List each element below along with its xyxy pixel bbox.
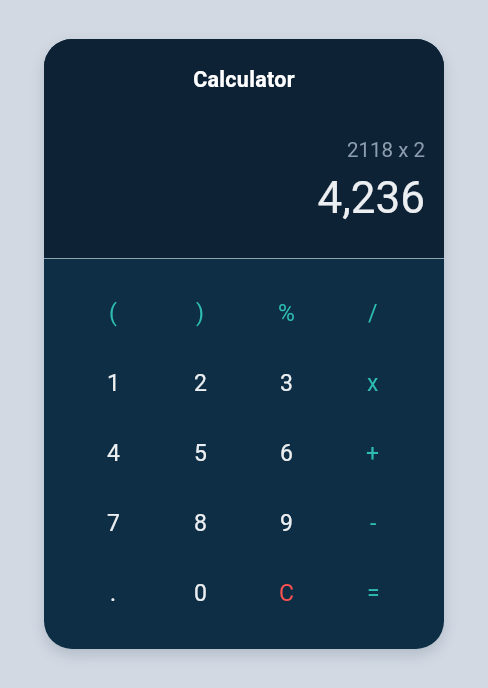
button[interactable]: Open bracket bbox=[70, 278, 156, 348]
staticText: 8 bbox=[194, 510, 207, 537]
staticText: 3 bbox=[280, 370, 293, 397]
staticText: 0 bbox=[194, 580, 207, 607]
staticText: 4,236 bbox=[317, 172, 425, 224]
button[interactable]: Seven bbox=[70, 488, 156, 558]
staticText: 2 bbox=[194, 370, 207, 397]
button[interactable]: Divide bbox=[330, 278, 416, 348]
staticText: 1 bbox=[107, 370, 120, 397]
staticText: 6 bbox=[280, 440, 293, 467]
staticText: x bbox=[367, 370, 379, 397]
button[interactable]: Two bbox=[157, 348, 243, 418]
staticText: 2118 x 2 bbox=[347, 138, 425, 162]
staticText: ) bbox=[196, 300, 205, 327]
button[interactable]: Zero bbox=[157, 558, 243, 628]
staticText: 5 bbox=[194, 440, 207, 467]
button[interactable]: Four bbox=[70, 418, 156, 488]
button[interactable]: Close bracket bbox=[157, 278, 243, 348]
staticText: - bbox=[370, 510, 377, 537]
staticText: 4 bbox=[107, 440, 120, 467]
staticText: C bbox=[279, 580, 294, 607]
button[interactable]: Plus bbox=[330, 418, 416, 488]
button[interactable]: Decimal point bbox=[70, 558, 156, 628]
staticText: . bbox=[110, 580, 117, 607]
staticText: / bbox=[368, 300, 378, 327]
staticText: % bbox=[278, 300, 295, 327]
button[interactable]: Equals bbox=[330, 558, 416, 628]
staticText: ( bbox=[109, 300, 117, 327]
button[interactable]: Minus bbox=[330, 488, 416, 558]
staticText: = bbox=[367, 580, 380, 607]
button[interactable]: Nine bbox=[243, 488, 329, 558]
button[interactable]: Eight bbox=[157, 488, 243, 558]
button[interactable]: Six bbox=[243, 418, 329, 488]
staticText: 7 bbox=[107, 510, 120, 537]
button[interactable]: Three bbox=[243, 348, 329, 418]
staticText: + bbox=[366, 440, 380, 467]
button[interactable]: Multiply bbox=[330, 348, 416, 418]
button[interactable]: One bbox=[70, 348, 156, 418]
button[interactable]: Clear bbox=[243, 558, 329, 628]
button[interactable]: Five bbox=[157, 418, 243, 488]
staticText: Calculator bbox=[193, 67, 295, 92]
button[interactable]: Percent bbox=[243, 278, 329, 348]
staticText: 9 bbox=[280, 510, 293, 537]
